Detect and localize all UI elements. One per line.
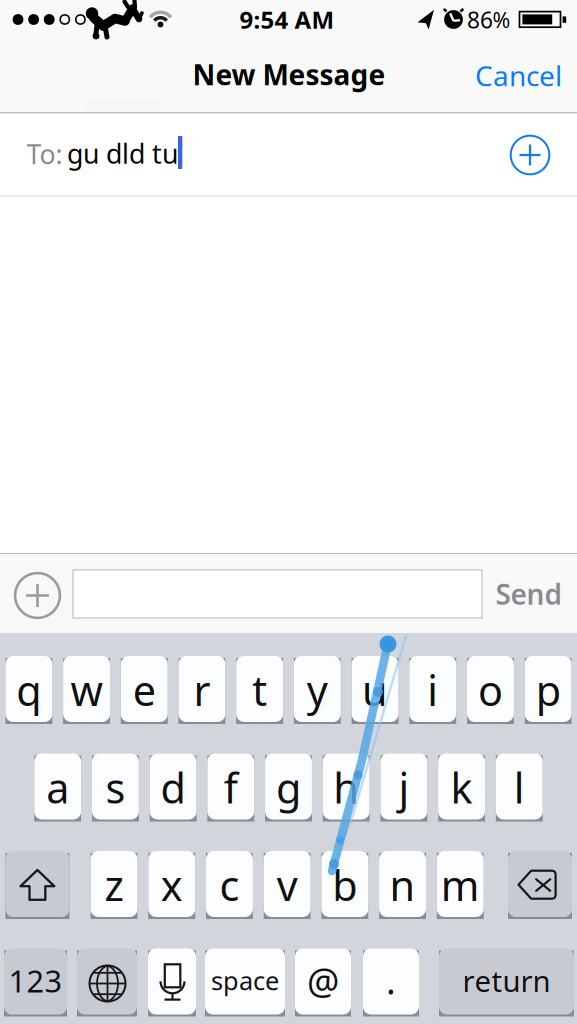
- button[interactable]: Send: [495, 575, 562, 613]
- button[interactable]: s: [92, 753, 139, 819]
- button[interactable]: c: [206, 851, 253, 917]
- button[interactable]: o: [467, 656, 514, 722]
- button[interactable]: [509, 134, 551, 176]
- button[interactable]: q: [5, 656, 52, 722]
- button[interactable]: w: [63, 656, 110, 722]
- button[interactable]: [13, 571, 61, 619]
- staticText: j: [398, 760, 409, 815]
- button[interactable]: [5, 851, 69, 917]
- staticText: New Message: [192, 56, 385, 93]
- button[interactable]: k: [438, 753, 485, 819]
- button[interactable]: d: [150, 753, 197, 819]
- button[interactable]: Cancel: [475, 57, 562, 94]
- staticText: n: [390, 858, 416, 912]
- staticText: @: [307, 957, 339, 1004]
- button[interactable]: y: [294, 656, 341, 722]
- staticText: q: [16, 663, 41, 717]
- button[interactable]: l: [496, 753, 543, 819]
- button[interactable]: f: [207, 753, 254, 819]
- staticText: s: [105, 760, 125, 815]
- staticText: a: [46, 760, 69, 815]
- button[interactable]: z: [91, 851, 137, 917]
- staticText: y: [307, 663, 328, 717]
- staticText: Send: [495, 575, 562, 613]
- button[interactable]: e: [121, 656, 168, 722]
- staticText: gu dld tu: [67, 136, 178, 171]
- button[interactable]: p: [525, 656, 572, 722]
- staticText: %: [492, 6, 510, 34]
- staticText: 9:54 AM: [239, 4, 334, 35]
- button[interactable]: g: [265, 753, 312, 819]
- button[interactable]: x: [148, 851, 195, 917]
- staticText: return: [462, 961, 550, 1000]
- staticText: g: [276, 760, 301, 815]
- staticText: u: [362, 663, 388, 717]
- button[interactable]: @: [295, 948, 351, 1014]
- button[interactable]: u: [352, 656, 398, 722]
- staticText: h: [333, 760, 359, 815]
- button[interactable]: n: [379, 851, 426, 917]
- staticText: c: [219, 858, 239, 912]
- staticText: l: [514, 760, 525, 815]
- button[interactable]: return: [439, 948, 574, 1014]
- button[interactable]: v: [264, 851, 311, 917]
- staticText: o: [478, 663, 503, 717]
- staticText: b: [332, 858, 357, 912]
- staticText: 123: [8, 960, 62, 1001]
- staticText: Cancel: [475, 57, 562, 94]
- button[interactable]: r: [178, 656, 225, 722]
- staticText: m: [441, 858, 480, 912]
- staticText: w: [70, 663, 102, 717]
- button[interactable]: [508, 851, 572, 917]
- button[interactable]: i: [409, 656, 456, 722]
- button[interactable]: t: [236, 656, 283, 722]
- staticText: 86: [467, 5, 493, 35]
- staticText: space: [211, 964, 279, 997]
- staticText: p: [536, 663, 561, 717]
- button[interactable]: [77, 948, 137, 1014]
- staticText: z: [104, 858, 123, 912]
- button[interactable]: b: [321, 851, 368, 917]
- staticText: r: [193, 663, 210, 717]
- staticText: i: [427, 663, 438, 717]
- button[interactable]: 123: [4, 948, 67, 1014]
- staticText: v: [277, 858, 298, 912]
- staticText: k: [451, 760, 473, 815]
- button[interactable]: j: [380, 753, 427, 819]
- staticText: d: [161, 760, 186, 815]
- button[interactable]: .: [363, 948, 419, 1014]
- button[interactable]: a: [34, 753, 81, 819]
- button[interactable]: m: [437, 851, 484, 917]
- staticText: t: [252, 663, 267, 717]
- button[interactable]: space: [205, 948, 285, 1014]
- staticText: x: [161, 858, 183, 912]
- staticText: f: [224, 760, 238, 815]
- button[interactable]: [148, 948, 196, 1014]
- staticText: .: [386, 957, 396, 1004]
- staticText: To:: [26, 136, 62, 172]
- button[interactable]: h: [323, 753, 370, 819]
- staticText: e: [133, 663, 156, 717]
